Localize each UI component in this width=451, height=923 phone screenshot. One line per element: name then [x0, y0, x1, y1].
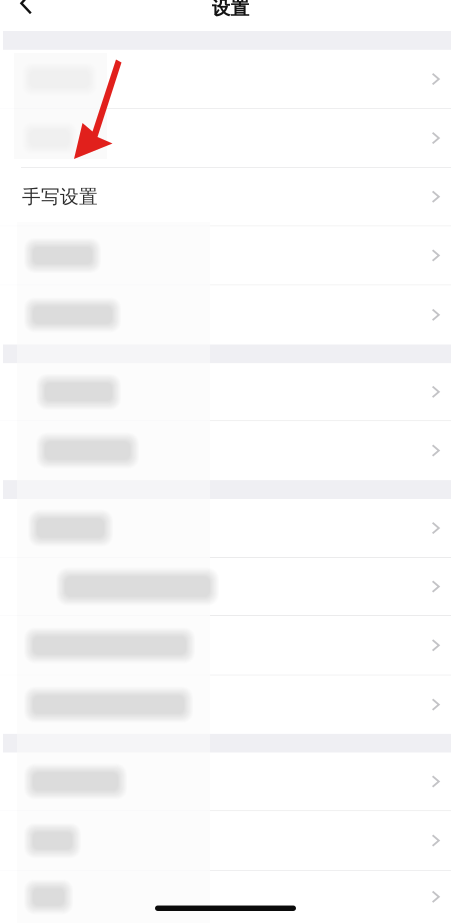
button[interactable]	[0, 285, 451, 344]
button[interactable]	[0, 109, 451, 167]
button[interactable]: 手写设置	[0, 168, 451, 226]
staticText: 手写设置	[22, 185, 98, 208]
button[interactable]	[0, 50, 451, 108]
button[interactable]	[0, 499, 451, 557]
button[interactable]	[0, 421, 451, 480]
button[interactable]	[0, 558, 451, 615]
button[interactable]	[0, 363, 451, 420]
staticText: 设置	[211, 0, 249, 19]
button[interactable]	[0, 226, 451, 285]
button[interactable]	[0, 616, 451, 675]
button[interactable]	[0, 871, 451, 923]
button[interactable]	[0, 753, 451, 810]
button[interactable]: Back	[0, 0, 451, 31]
button[interactable]	[0, 811, 451, 870]
button[interactable]	[0, 675, 451, 734]
